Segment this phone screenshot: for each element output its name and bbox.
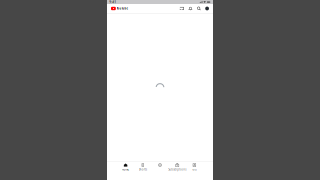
button[interactable]: Shorts <box>134 163 151 171</box>
button[interactable]: Cast <box>179 6 184 10</box>
button[interactable]: Search <box>197 6 201 10</box>
button[interactable]: Home <box>117 163 134 171</box>
staticText: Subscriptions <box>168 168 186 171</box>
button[interactable] <box>151 163 169 171</box>
button[interactable]: Account <box>205 7 209 10</box>
staticText: YouTube <box>117 7 128 10</box>
staticText: 9:41 <box>109 0 116 4</box>
button[interactable]: Subscriptions <box>169 163 186 171</box>
button[interactable]: You <box>186 163 203 171</box>
staticText: Shorts <box>139 168 147 171</box>
staticText: Home <box>122 168 130 171</box>
button[interactable]: Notifications <box>188 6 192 10</box>
button[interactable]: YouTube Home <box>111 7 128 10</box>
staticText: You <box>192 168 197 171</box>
